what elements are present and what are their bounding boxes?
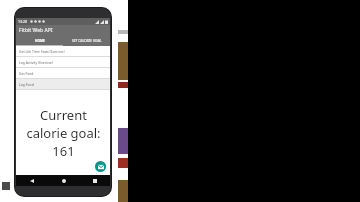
button[interactable]: Get Food: [16, 68, 110, 78]
staticText: 13:28: [18, 19, 27, 24]
staticText: Get Food: [19, 71, 34, 76]
button[interactable]: Log Food: [16, 79, 110, 89]
staticText: Log Food: [19, 82, 34, 87]
button[interactable]: Home: [48, 175, 79, 186]
button[interactable]: SET CALORIE GOAL: [63, 36, 110, 45]
staticText: Current: [40, 106, 87, 124]
staticText: 161: [52, 142, 75, 160]
staticText: Fitbit Web API: [19, 27, 53, 34]
button[interactable]: Send message: [95, 161, 106, 172]
staticText: Log Activity (Exercise): [19, 60, 54, 65]
staticText: calorie goal:: [26, 124, 101, 142]
button[interactable]: HOME: [16, 36, 63, 45]
button[interactable]: Back: [16, 175, 48, 186]
button[interactable]: Get Life Time Stats (Exercise): [16, 46, 110, 56]
staticText: HOME: [35, 39, 45, 43]
staticText: SET CALORIE GOAL: [72, 39, 102, 43]
button[interactable]: Log Activity (Exercise): [16, 57, 110, 67]
staticText: Get Life Time Stats (Exercise): [19, 49, 65, 54]
button[interactable]: Recent apps: [79, 175, 110, 186]
